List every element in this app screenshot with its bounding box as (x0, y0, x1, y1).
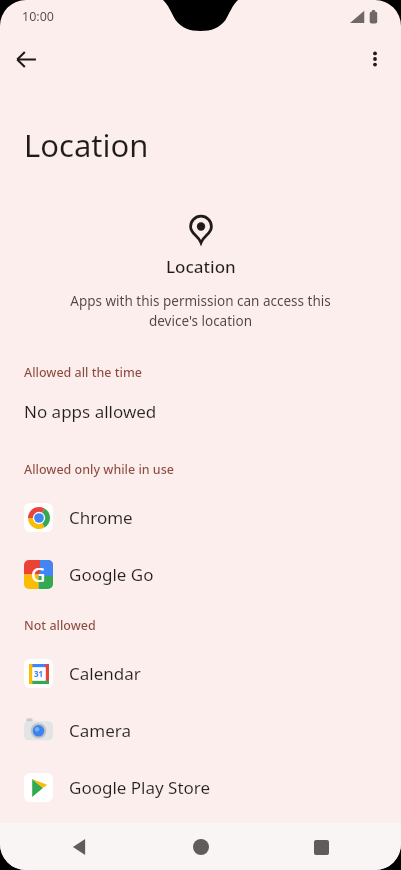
button[interactable]: Google Play Store (0, 759, 401, 816)
staticText: No apps allowed (24, 400, 157, 423)
staticText: Allowed all the time (24, 364, 142, 381)
staticText: Google Play Store (69, 776, 211, 799)
staticText: Google Go (69, 563, 154, 586)
staticText: Camera (69, 719, 131, 742)
staticText: 31 (34, 668, 44, 679)
button[interactable]: Recent apps (301, 827, 341, 867)
button[interactable]: Back (6, 39, 46, 79)
button[interactable]: Back (60, 827, 100, 867)
button[interactable]: Home (181, 827, 221, 867)
staticText: Chrome (69, 506, 133, 529)
staticText: Not allowed (24, 617, 96, 634)
button[interactable]: More options (355, 39, 395, 79)
staticText: Allowed only while in use (24, 461, 174, 478)
button[interactable]: Camera (0, 702, 401, 759)
staticText: 10:00 (22, 8, 54, 25)
button[interactable]: G (0, 546, 401, 603)
button[interactable]: Chrome (0, 489, 401, 546)
staticText: Location (24, 124, 149, 166)
staticText: Calendar (69, 662, 141, 685)
staticText: Location (166, 255, 236, 278)
staticText: G (31, 561, 46, 588)
staticText: Apps with this permission can access thi… (70, 292, 331, 330)
button[interactable]: 31 (0, 645, 401, 702)
